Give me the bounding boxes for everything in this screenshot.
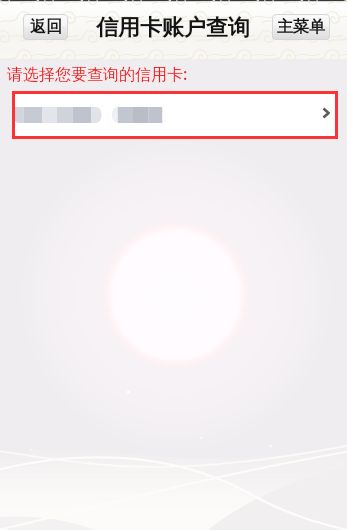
- staticText: 信用卡账户查询: [96, 14, 250, 42]
- button[interactable]: 查看该信用卡: [12, 91, 338, 139]
- staticText: 主菜单: [277, 17, 325, 37]
- staticText: 请选择您要查询的信用卡:: [7, 63, 188, 85]
- button[interactable]: 主菜单: [272, 14, 330, 40]
- other: 查看该信用卡: [322, 107, 330, 119]
- staticText: 返回: [30, 17, 62, 37]
- button[interactable]: 返回: [23, 14, 68, 40]
